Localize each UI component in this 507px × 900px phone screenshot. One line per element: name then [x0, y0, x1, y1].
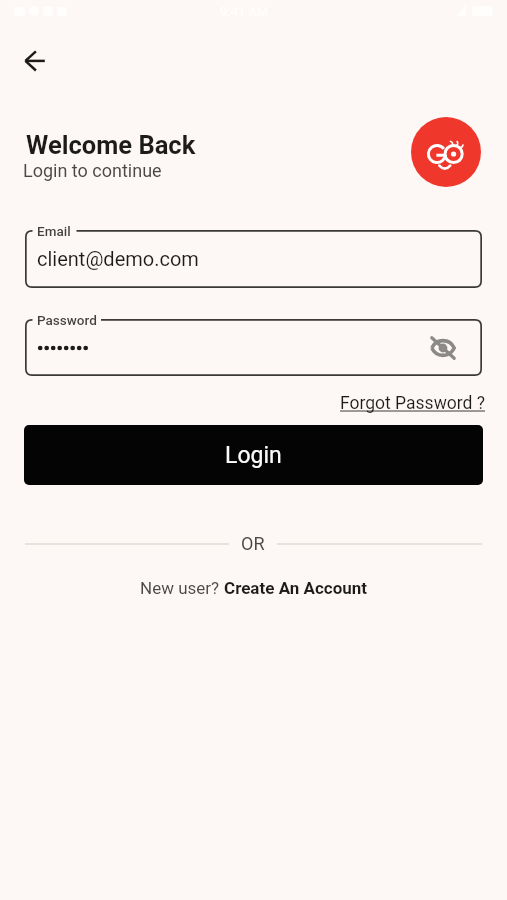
staticText: client@demo.com [37, 247, 460, 270]
staticText: Create An Account [224, 578, 368, 598]
staticText: Login to continue [23, 160, 162, 181]
staticText: Password [37, 312, 97, 328]
button[interactable]: Forgot Password ? [332, 389, 494, 418]
staticText: Login [225, 442, 282, 469]
button[interactable]: Login [24, 425, 483, 485]
button[interactable]: Back [11, 37, 59, 85]
staticText: Forgot Password ? [340, 393, 486, 414]
button[interactable]: Create An Account [224, 578, 368, 598]
button[interactable]: Go [411, 117, 481, 187]
button[interactable] [411, 117, 481, 187]
staticText: Welcome Back [26, 130, 196, 160]
button[interactable]: Show password [426, 331, 460, 365]
staticText: Email [37, 223, 71, 239]
staticText: New user? [140, 578, 224, 598]
staticText: OR [241, 533, 265, 554]
